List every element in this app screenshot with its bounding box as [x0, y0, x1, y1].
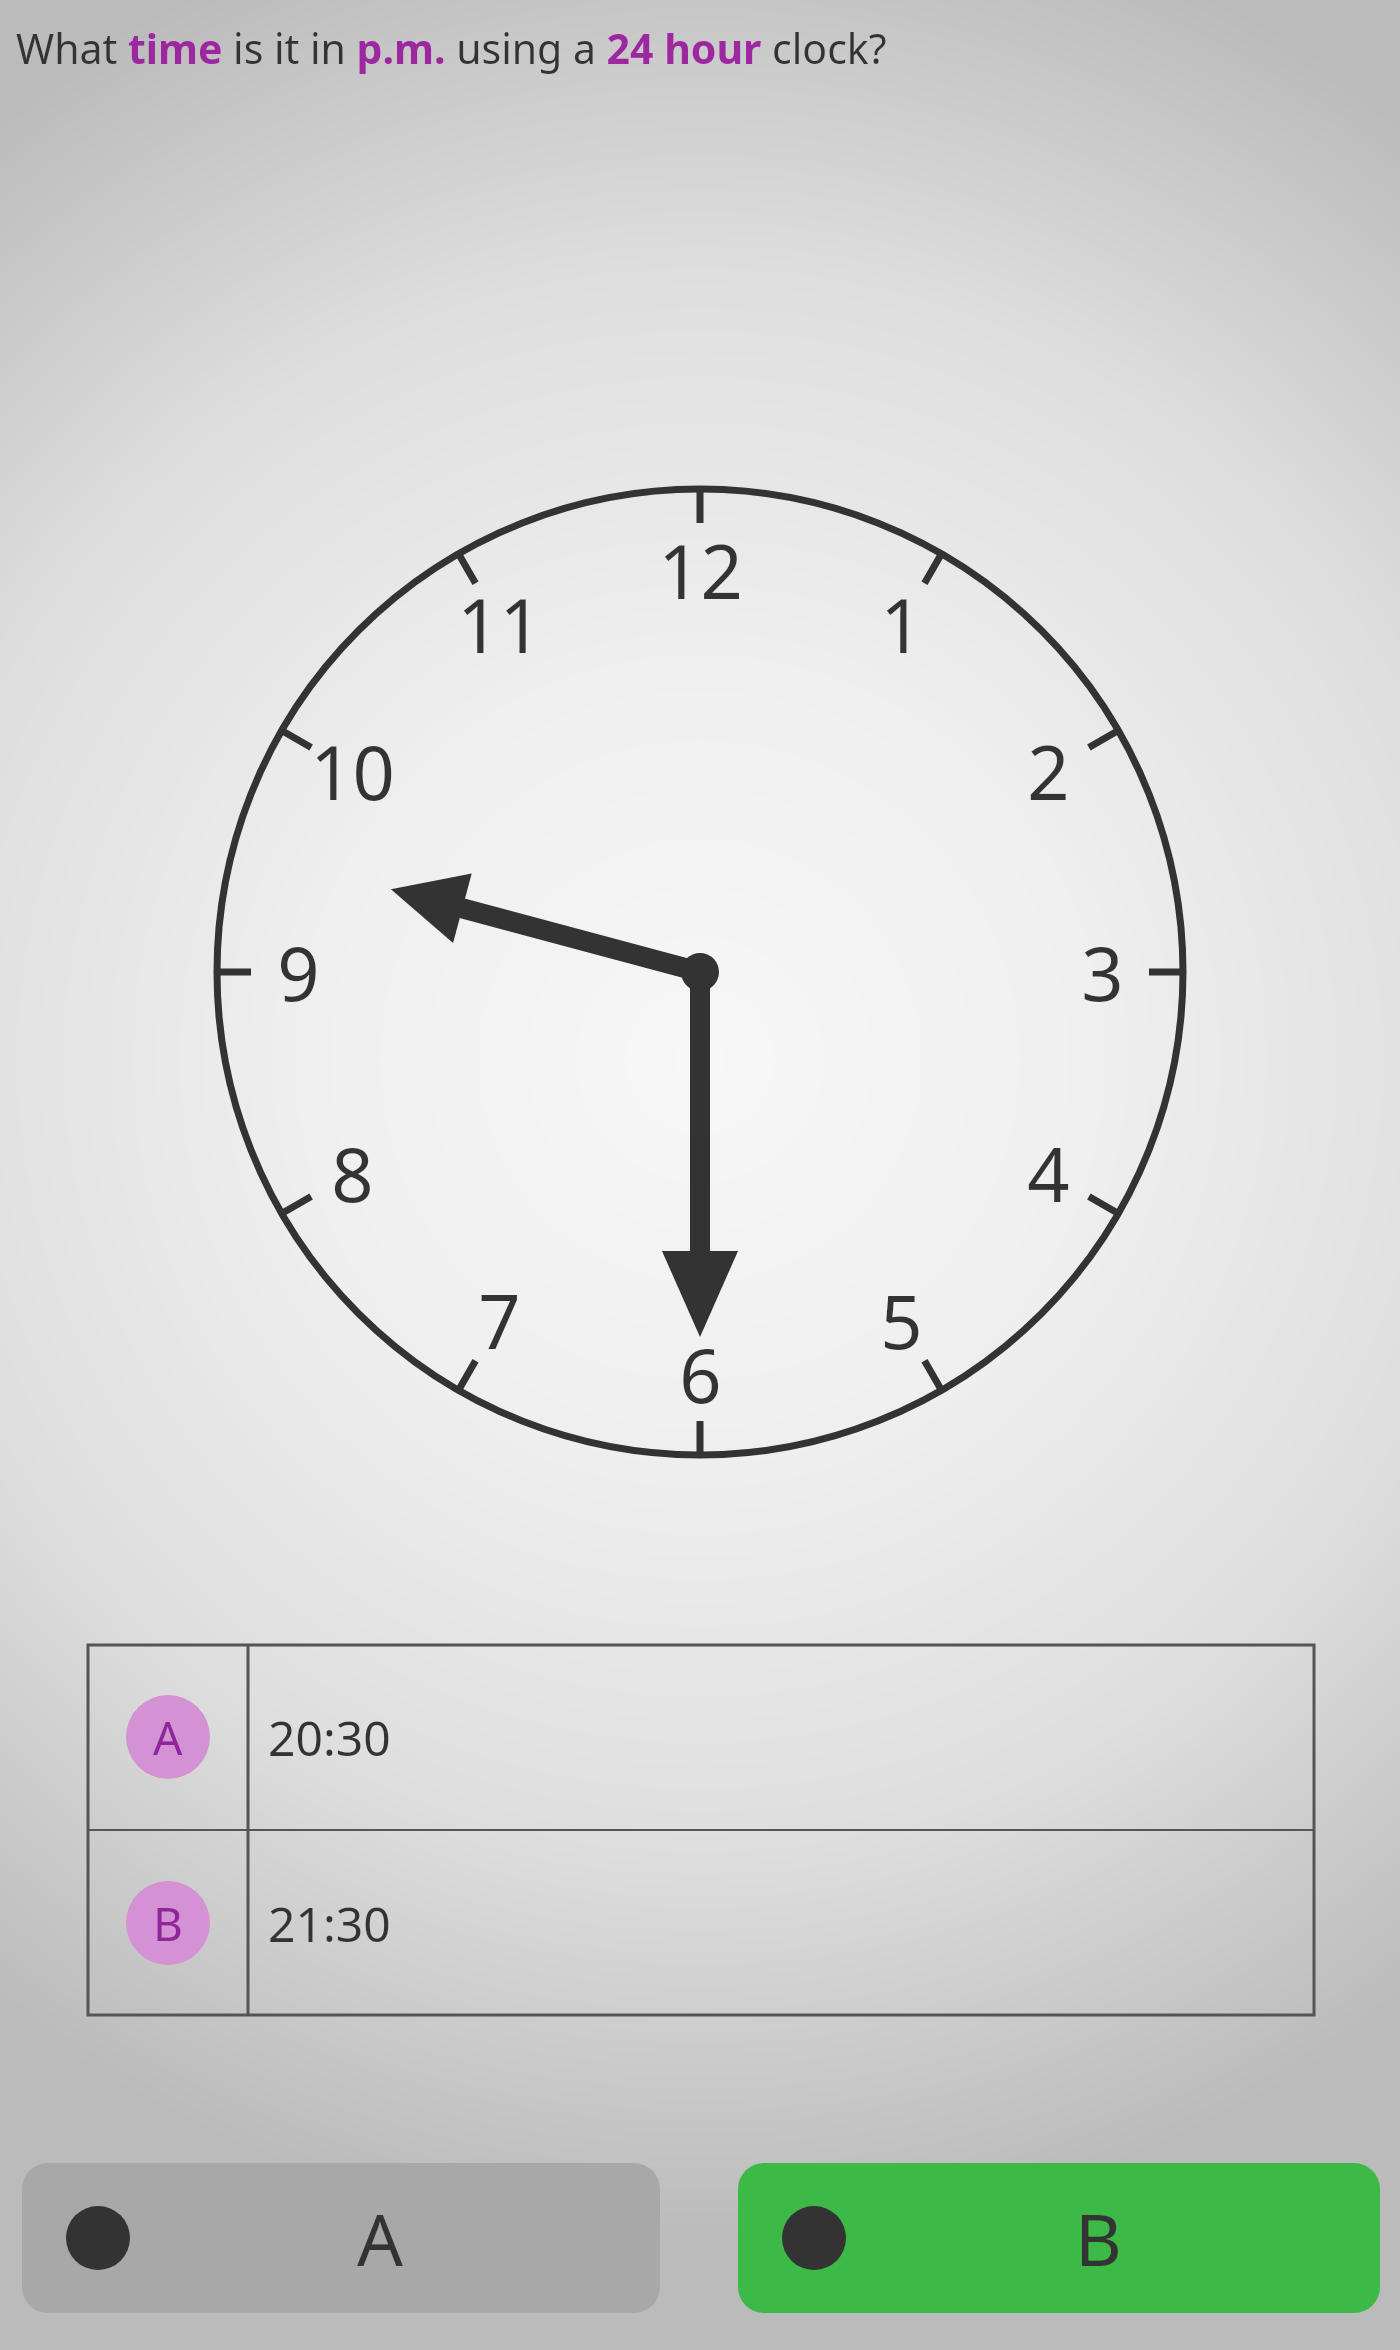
- staticText: 6: [679, 1324, 722, 1425]
- staticText: 10: [310, 721, 395, 822]
- staticText: 21:30: [268, 1891, 391, 1956]
- staticText: 8: [331, 1123, 374, 1224]
- staticText: A: [357, 2189, 404, 2287]
- staticText: 3: [1081, 922, 1124, 1023]
- staticText: 1: [880, 574, 923, 675]
- button[interactable]: A: [22, 2163, 660, 2313]
- staticText: 20:30: [268, 1705, 391, 1770]
- staticText: 12: [658, 520, 743, 621]
- staticText: B: [153, 1892, 183, 1955]
- staticText: A: [153, 1706, 183, 1769]
- staticText: 7: [478, 1270, 521, 1371]
- button[interactable]: B: [738, 2163, 1380, 2313]
- staticText: B: [1075, 2189, 1122, 2287]
- other: Analogue clock showing half past nine: [0, 0, 1400, 2350]
- staticText: 9: [277, 922, 320, 1023]
- staticText: 11: [457, 574, 542, 675]
- button[interactable]: B: [88, 1831, 1314, 2015]
- staticText: What time is it in p.m. using a 24 hour …: [16, 20, 887, 76]
- staticText: 4: [1027, 1123, 1070, 1224]
- button[interactable]: A: [88, 1645, 1314, 1829]
- staticText: 2: [1027, 721, 1070, 822]
- staticText: 5: [880, 1270, 923, 1371]
